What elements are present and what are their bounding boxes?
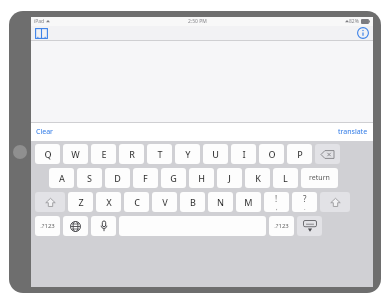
staticText: B [190, 196, 196, 208]
button[interactable]: M [236, 192, 261, 212]
button[interactable]: W [63, 144, 88, 164]
staticText: Z [78, 196, 84, 208]
button[interactable]: O [259, 144, 284, 164]
staticText: ! [275, 193, 278, 204]
button[interactable]: F [133, 168, 158, 188]
staticText: ? [303, 193, 307, 204]
button[interactable]: Clear [36, 127, 53, 137]
staticText: C [134, 196, 140, 208]
staticText: , [276, 204, 278, 212]
staticText: U [212, 148, 219, 160]
staticText: translate [338, 127, 368, 137]
button[interactable]: C [124, 192, 149, 212]
button[interactable]: Delete [315, 144, 340, 164]
button[interactable]: ? [292, 192, 317, 212]
button[interactable]: return [301, 168, 338, 188]
button[interactable]: Hide keyboard [297, 216, 322, 236]
staticText: S [87, 172, 92, 184]
button[interactable]: Info [357, 27, 369, 39]
staticText: X [106, 196, 112, 208]
staticText: O [268, 148, 276, 160]
staticText: D [114, 172, 121, 184]
staticText: E [101, 148, 107, 160]
button[interactable]: Shift [320, 192, 350, 212]
staticText: N [217, 196, 224, 208]
staticText: H [198, 172, 205, 184]
button[interactable]: S [77, 168, 102, 188]
staticText: G [170, 172, 177, 184]
button[interactable]: Home [13, 145, 27, 159]
staticText: . [304, 204, 306, 212]
button[interactable]: P [287, 144, 312, 164]
button[interactable]: Shift [35, 192, 65, 212]
button[interactable]: N [208, 192, 233, 212]
staticText: M [244, 196, 253, 208]
button[interactable]: .?123 [35, 216, 60, 236]
staticText: A [59, 172, 65, 184]
button[interactable]: B [180, 192, 205, 212]
button[interactable]: X [96, 192, 121, 212]
staticText: T [157, 148, 163, 160]
button[interactable]: Dictate [91, 216, 116, 236]
button[interactable]: H [189, 168, 214, 188]
staticText: .?123 [40, 222, 55, 230]
button[interactable]: Y [175, 144, 200, 164]
button[interactable]: E [91, 144, 116, 164]
staticText: 82% [349, 18, 359, 25]
staticText: P [297, 148, 303, 160]
staticText: return [309, 173, 330, 183]
staticText: W [71, 148, 80, 160]
staticText: iPad [34, 18, 45, 25]
staticText: K [255, 172, 261, 184]
button[interactable]: translate [338, 127, 368, 137]
button[interactable]: T [147, 144, 172, 164]
staticText: Clear [36, 127, 53, 137]
button[interactable]: I [231, 144, 256, 164]
staticText: Q [44, 148, 52, 160]
button[interactable]: Z [68, 192, 93, 212]
button[interactable]: Change keyboard language [63, 216, 88, 236]
staticText: V [162, 196, 168, 208]
button[interactable]: A [49, 168, 74, 188]
staticText: 2:50 PM [188, 18, 207, 25]
button[interactable]: ! [264, 192, 289, 212]
button[interactable]: G [161, 168, 186, 188]
button[interactable]: L [273, 168, 298, 188]
button[interactable]: U [203, 144, 228, 164]
staticText: J [228, 172, 231, 184]
staticText: R [129, 148, 135, 160]
button[interactable]: J [217, 168, 242, 188]
staticText: .?123 [274, 222, 289, 230]
button[interactable]: Q [35, 144, 60, 164]
button[interactable]: Library [35, 28, 48, 39]
staticText: I [242, 148, 246, 160]
staticText: F [143, 172, 148, 184]
staticText: L [283, 172, 288, 184]
staticText: Y [185, 148, 191, 160]
button[interactable]: V [152, 192, 177, 212]
button[interactable]: R [119, 144, 144, 164]
button[interactable]: .?123 [269, 216, 294, 236]
button[interactable]: K [245, 168, 270, 188]
button[interactable]: D [105, 168, 130, 188]
